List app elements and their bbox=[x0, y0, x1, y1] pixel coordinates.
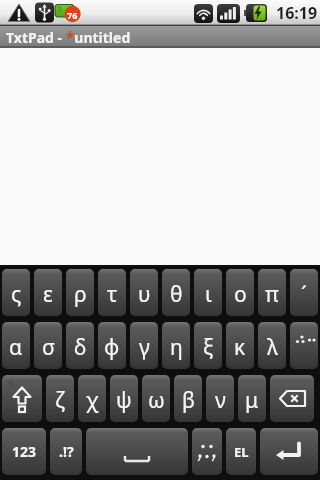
button[interactable]: ´ bbox=[290, 269, 318, 316]
staticText: μ bbox=[245, 386, 259, 415]
button[interactable] bbox=[192, 428, 222, 475]
staticText: ψ bbox=[116, 386, 132, 415]
button[interactable]: γ bbox=[130, 322, 158, 369]
staticText: δ bbox=[74, 333, 87, 362]
button[interactable]: .!? bbox=[50, 428, 82, 475]
button[interactable]: ρ bbox=[66, 269, 94, 316]
staticText: ξ bbox=[203, 333, 214, 362]
staticText: β bbox=[182, 386, 195, 415]
staticText: υ bbox=[138, 280, 151, 309]
button[interactable]: ι bbox=[194, 269, 222, 316]
staticText: TxtPad - *untitled bbox=[6, 26, 131, 48]
button[interactable]: ν bbox=[206, 375, 234, 422]
button[interactable]: φ bbox=[98, 322, 126, 369]
staticText: σ bbox=[42, 333, 55, 362]
button[interactable]: ς bbox=[2, 269, 30, 316]
button[interactable]: κ bbox=[226, 322, 254, 369]
button[interactable]: μ bbox=[238, 375, 266, 422]
button[interactable] bbox=[260, 428, 318, 475]
button[interactable]: 123 bbox=[2, 428, 46, 475]
staticText: η bbox=[170, 333, 183, 362]
button[interactable]: λ bbox=[258, 322, 286, 369]
staticText: 123 bbox=[12, 442, 37, 461]
button[interactable] bbox=[270, 375, 314, 422]
staticText: ο bbox=[234, 280, 247, 309]
staticText: ω bbox=[148, 386, 165, 415]
button[interactable]: χ bbox=[78, 375, 106, 422]
button[interactable]: β bbox=[174, 375, 202, 422]
staticText: EL bbox=[234, 443, 249, 461]
staticText: ι bbox=[205, 280, 212, 309]
button[interactable] bbox=[86, 428, 188, 475]
button[interactable]: η bbox=[162, 322, 190, 369]
button[interactable]: δ bbox=[66, 322, 94, 369]
staticText: ´ bbox=[301, 280, 307, 309]
staticText: α bbox=[9, 333, 23, 362]
button[interactable]: π bbox=[258, 269, 286, 316]
staticText: ζ bbox=[55, 386, 65, 415]
staticText: π bbox=[265, 280, 279, 309]
button[interactable] bbox=[2, 375, 42, 422]
button[interactable]: ψ bbox=[110, 375, 138, 422]
staticText: γ bbox=[139, 333, 150, 362]
button[interactable]: ω bbox=[142, 375, 170, 422]
button[interactable]: σ bbox=[34, 322, 62, 369]
button[interactable]: θ bbox=[162, 269, 190, 316]
button[interactable]: ε bbox=[34, 269, 62, 316]
staticText: 76 bbox=[67, 9, 78, 21]
staticText: 16:19 bbox=[276, 2, 318, 24]
button[interactable]: ο bbox=[226, 269, 254, 316]
staticText: .!? bbox=[59, 442, 74, 461]
button[interactable] bbox=[290, 322, 318, 369]
staticText: λ bbox=[267, 333, 278, 362]
staticText: ρ bbox=[74, 280, 87, 309]
button[interactable]: τ bbox=[98, 269, 126, 316]
staticText: κ bbox=[234, 333, 246, 362]
button[interactable]: ζ bbox=[46, 375, 74, 422]
button[interactable]: υ bbox=[130, 269, 158, 316]
staticText: θ bbox=[170, 280, 183, 309]
button[interactable]: ξ bbox=[194, 322, 222, 369]
button[interactable]: α bbox=[2, 322, 30, 369]
staticText: τ bbox=[107, 280, 118, 309]
staticText: φ bbox=[104, 333, 120, 362]
staticText: ε bbox=[43, 280, 53, 309]
staticText: ς bbox=[11, 280, 22, 309]
staticText: ν bbox=[215, 386, 226, 415]
staticText: χ bbox=[86, 386, 99, 415]
button[interactable]: EL bbox=[226, 428, 256, 475]
